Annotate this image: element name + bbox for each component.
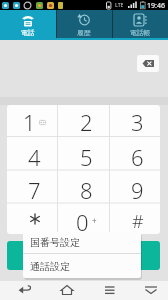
button[interactable]: 3 bbox=[110, 105, 160, 137]
staticText: LTE bbox=[115, 2, 124, 9]
button[interactable]: 7 bbox=[7, 170, 58, 203]
staticText: 4 bbox=[28, 142, 41, 172]
button[interactable] bbox=[8, 281, 42, 300]
staticText: 5 bbox=[80, 142, 93, 172]
staticText: # bbox=[132, 209, 144, 234]
button[interactable]: 電話 bbox=[0, 10, 56, 40]
button[interactable]: 0 bbox=[58, 203, 110, 234]
button[interactable] bbox=[93, 281, 127, 300]
button[interactable]: # bbox=[110, 203, 160, 234]
staticText: 0 bbox=[76, 207, 89, 234]
staticText: 電話帳 bbox=[130, 28, 151, 37]
staticText: 8 bbox=[80, 175, 93, 205]
button[interactable] bbox=[7, 203, 58, 234]
staticText: 2 bbox=[80, 107, 93, 137]
staticText: 7 bbox=[28, 175, 41, 205]
staticText: 6 bbox=[131, 142, 144, 172]
button[interactable]: 電話帳 bbox=[112, 10, 168, 40]
button[interactable] bbox=[134, 281, 168, 300]
staticText: 国番号設定 bbox=[30, 236, 80, 249]
button[interactable]: 履歴 bbox=[56, 10, 112, 40]
button[interactable]: 5 bbox=[58, 137, 110, 171]
button[interactable]: 9 bbox=[110, 170, 160, 203]
staticText: 履歴 bbox=[77, 28, 91, 37]
staticText: 通話設定 bbox=[30, 260, 70, 273]
button[interactable]: 国番号設定 bbox=[23, 232, 141, 253]
button[interactable] bbox=[50, 281, 84, 300]
button[interactable]: 通話設定 bbox=[23, 254, 141, 278]
staticText: 9 bbox=[131, 175, 144, 205]
button[interactable]: 4 bbox=[7, 137, 58, 171]
staticText: + bbox=[92, 215, 97, 226]
staticText: 3 bbox=[131, 107, 144, 137]
staticText: 19:46 bbox=[147, 1, 165, 11]
button[interactable] bbox=[137, 55, 159, 72]
staticText: 電話 bbox=[21, 28, 35, 37]
button[interactable]: 8 bbox=[58, 170, 110, 203]
button[interactable] bbox=[7, 241, 160, 270]
button[interactable]: 6 bbox=[110, 137, 160, 171]
button[interactable]: 1 bbox=[7, 105, 58, 137]
staticText: 1 bbox=[23, 107, 36, 137]
button[interactable]: 2 bbox=[58, 105, 110, 137]
